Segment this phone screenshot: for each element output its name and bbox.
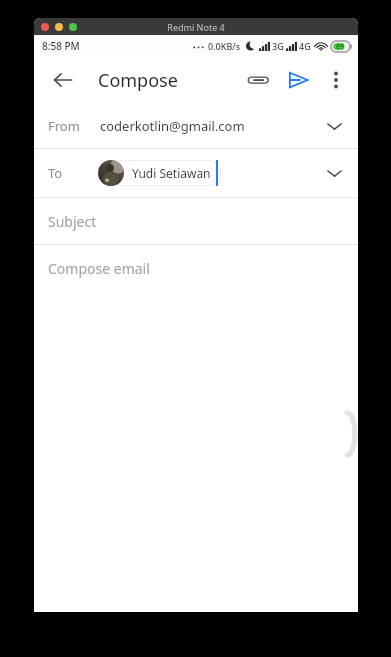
- staticText: Yudi Setiawan: [132, 165, 211, 181]
- staticText: 8:58 PM: [42, 39, 80, 53]
- staticText: To: [48, 164, 63, 182]
- button[interactable]: Back: [42, 59, 84, 101]
- button[interactable]: Compose email: [34, 245, 358, 612]
- staticText: 69: [336, 42, 345, 52]
- button[interactable]: Send: [278, 60, 318, 100]
- other: Expand recipients: [318, 157, 350, 189]
- button[interactable]: Yudi Setiawan: [110, 160, 221, 186]
- staticText: coderkotlin@gmail.com: [100, 117, 245, 135]
- staticText: Redmi Note 4: [167, 21, 225, 33]
- other: Expand from: [318, 110, 350, 142]
- staticText: From: [48, 117, 80, 135]
- button[interactable]: Subject: [34, 198, 358, 244]
- staticText: 4G: [299, 40, 311, 52]
- button[interactable]: More options: [318, 62, 354, 98]
- staticText: Compose email: [48, 259, 150, 278]
- staticText: Subject: [48, 212, 97, 231]
- staticText: 0.0KB/s: [208, 40, 241, 52]
- staticText: 3G: [272, 40, 284, 52]
- button[interactable]: From: [34, 104, 358, 148]
- button[interactable]: To: [34, 149, 358, 197]
- staticText: Compose: [98, 68, 178, 93]
- button[interactable]: Attach file: [238, 60, 278, 100]
